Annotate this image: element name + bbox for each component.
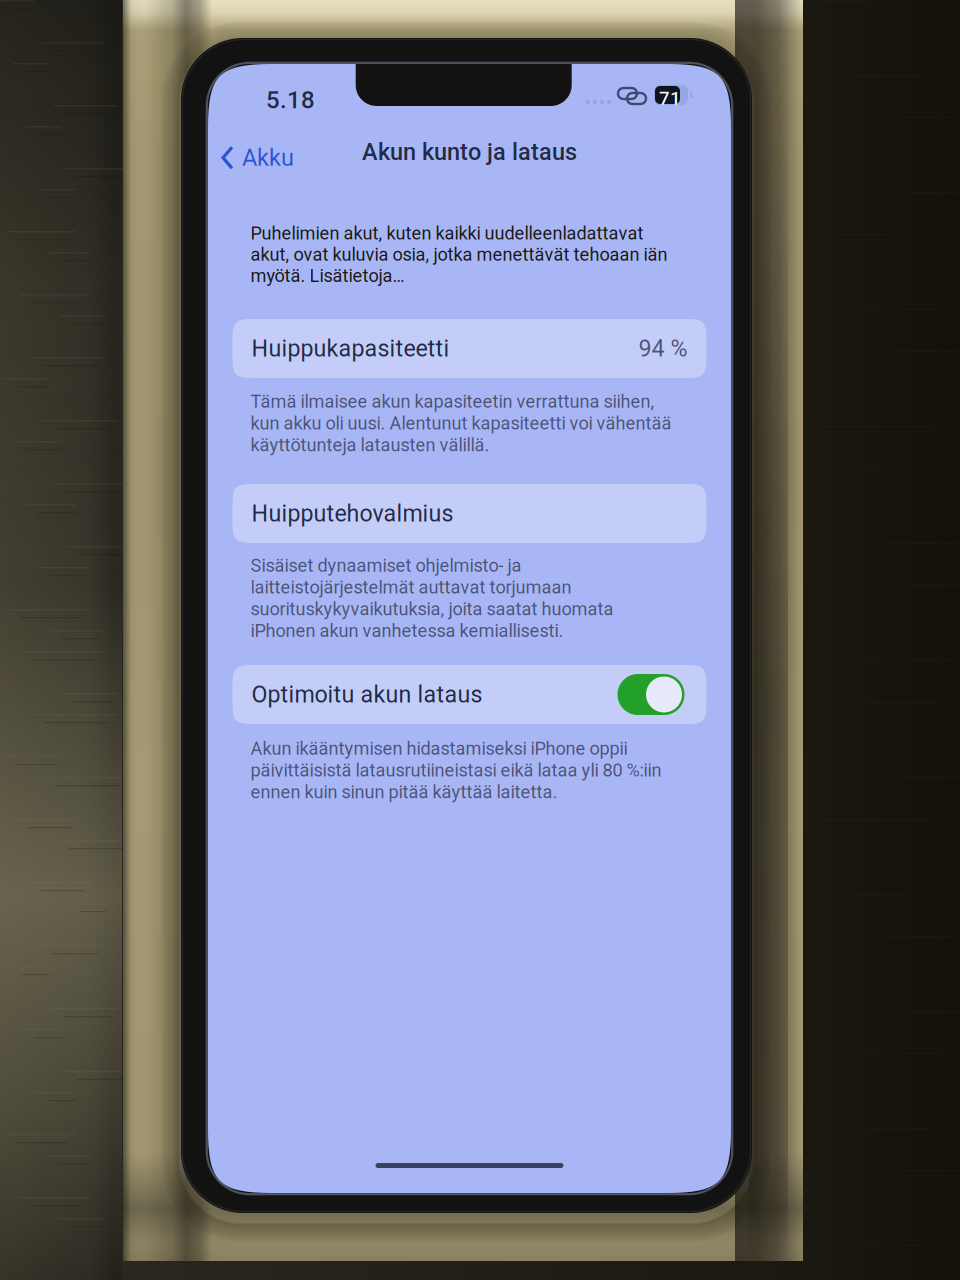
staticText: Akku — [242, 144, 294, 171]
staticText: Huippukapasiteetti — [251, 335, 449, 362]
staticText: Optimoitu akun lataus — [251, 681, 482, 708]
staticText: Tämä ilmaisee akun kapasiteetin verrattu… — [250, 391, 671, 456]
staticText: 71 — [659, 87, 681, 109]
staticText: 94 % — [638, 335, 687, 362]
button[interactable]: Akku — [216, 136, 298, 179]
button[interactable]: Huippukapasiteetti — [232, 319, 706, 378]
staticText: Akun kunto ja lataus — [362, 138, 577, 166]
staticText: Huipputehovalmius — [251, 500, 453, 527]
staticText: Akun ikääntymisen hidastamiseksi iPhone … — [250, 738, 661, 803]
staticText: Puhelimien akut, kuten kaikki uudelleenl… — [250, 223, 667, 286]
staticText: Sisäiset dynaamiset ohjelmisto- ja laitt… — [250, 555, 613, 641]
staticText: 5.18 — [266, 86, 315, 114]
button[interactable]: Optimoitu akun lataus — [232, 665, 706, 724]
button[interactable]: Huipputehovalmius — [232, 484, 706, 543]
